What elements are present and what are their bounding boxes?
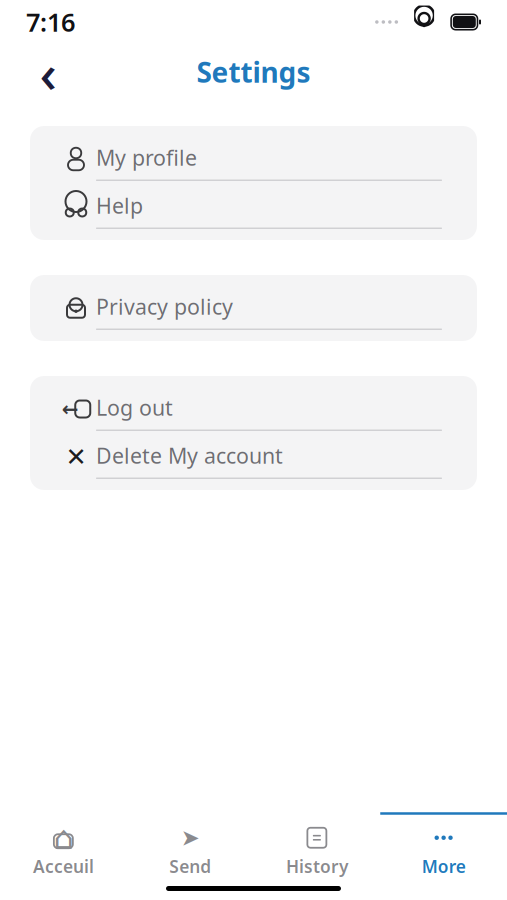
button[interactable]: More — [380, 816, 507, 882]
button[interactable]: ➤ — [127, 816, 254, 882]
button[interactable]: My profile — [30, 139, 477, 179]
staticText: Delete My account — [96, 441, 283, 470]
staticText: ‹ — [39, 37, 56, 107]
staticText: My profile — [96, 143, 197, 172]
button[interactable]: History — [253, 816, 380, 882]
staticText: Log out — [96, 393, 173, 422]
button[interactable]: Help — [30, 187, 477, 227]
button[interactable]: ⌂ — [0, 816, 127, 882]
staticText: ⌂ — [53, 820, 73, 856]
staticText: Send — [169, 855, 211, 878]
staticText: ➤ — [181, 825, 200, 851]
staticText: Acceuil — [33, 855, 94, 878]
button[interactable]: Privacy policy — [30, 288, 477, 328]
staticText: ✕ — [65, 443, 86, 471]
button[interactable]: Back — [26, 50, 70, 94]
staticText: More — [422, 855, 466, 878]
button[interactable]: ✕ — [30, 437, 477, 477]
staticText: Help — [96, 191, 143, 220]
staticText: Privacy policy — [96, 292, 233, 321]
staticText: ← — [62, 398, 79, 420]
staticText: Settings — [196, 53, 310, 91]
staticText: History — [286, 855, 348, 878]
button[interactable]: ← — [30, 389, 477, 429]
staticText: 7:16 — [26, 5, 75, 39]
